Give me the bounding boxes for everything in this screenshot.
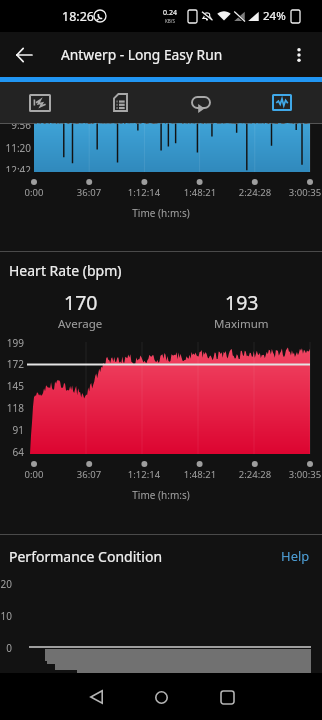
staticText: 145 xyxy=(6,379,24,393)
staticText: 193 xyxy=(225,289,259,316)
staticText: 10 xyxy=(0,609,12,623)
staticText: 0 xyxy=(6,641,12,655)
staticText: 118 xyxy=(6,401,24,415)
button[interactable]: Details xyxy=(80,82,160,123)
button[interactable]: Home xyxy=(138,674,184,720)
staticText: 2:24:28 xyxy=(230,468,280,481)
button[interactable]: More options xyxy=(277,33,321,77)
staticText: 64 xyxy=(12,445,24,459)
staticText: KB/S xyxy=(165,18,175,24)
button[interactable]: Help xyxy=(277,545,314,567)
staticText: 0:00 xyxy=(9,186,59,199)
staticText: 9:56 xyxy=(11,124,31,132)
staticText: Time (h:m:s) xyxy=(0,206,322,220)
staticText: 3:00:35 xyxy=(280,186,322,199)
staticText: 0:00 xyxy=(9,468,59,481)
staticText: 11:20 xyxy=(5,141,31,155)
button[interactable]: Laps xyxy=(160,82,241,123)
staticText: 36:07 xyxy=(64,468,114,481)
button[interactable]: Recent apps xyxy=(204,674,250,720)
staticText: 18:26 xyxy=(62,8,94,25)
staticText: Time (h:m:s) xyxy=(0,488,322,502)
staticText: 199 xyxy=(6,336,24,350)
staticText: 172 xyxy=(6,357,24,371)
staticText: 12:42 xyxy=(5,163,31,172)
staticText: 36:07 xyxy=(64,186,114,199)
staticText: Antwerp - Long Easy Run xyxy=(61,45,223,64)
staticText: Heart Rate (bpm) xyxy=(9,261,122,280)
staticText: 170 xyxy=(64,289,98,316)
staticText: 1:12:14 xyxy=(119,468,169,481)
staticText: 1:48:21 xyxy=(175,468,225,481)
staticText: 20 xyxy=(0,577,12,591)
button[interactable]: Charts xyxy=(241,82,322,123)
button[interactable]: Back xyxy=(73,674,119,720)
staticText: Performance Condition xyxy=(9,547,163,566)
staticText: 91 xyxy=(12,423,24,437)
staticText: Average xyxy=(58,316,103,332)
button[interactable]: Navigate up xyxy=(2,33,46,77)
staticText: 1:12:14 xyxy=(119,186,169,199)
staticText: 3:00:35 xyxy=(280,468,322,481)
staticText: Help xyxy=(281,547,310,565)
staticText: 2:24:28 xyxy=(230,186,280,199)
staticText: 0.24 xyxy=(163,8,177,18)
staticText: 1:48:21 xyxy=(175,186,225,199)
staticText: 24% xyxy=(263,8,286,24)
button[interactable]: Map xyxy=(0,82,80,123)
staticText: Maximum xyxy=(214,316,269,332)
